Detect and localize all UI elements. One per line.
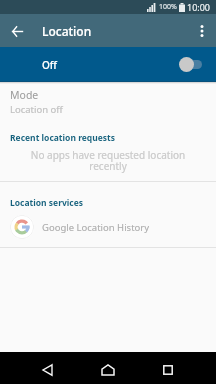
- staticText: Location services: [10, 197, 84, 209]
- button[interactable]: [6, 20, 28, 42]
- staticText: Recent location requests: [10, 132, 116, 144]
- staticText: 10:00: [187, 1, 211, 13]
- button[interactable]: Mode: [0, 88, 216, 116]
- button[interactable]: Off: [0, 47, 216, 82]
- button[interactable]: [193, 22, 211, 40]
- button[interactable]: [35, 358, 59, 382]
- staticText: Location: [42, 23, 92, 39]
- staticText: Google Location History: [42, 221, 150, 234]
- staticText: No apps have requested location recently: [0, 148, 216, 173]
- staticText: Location off: [10, 103, 63, 116]
- button[interactable]: Google Location History: [0, 215, 216, 239]
- button[interactable]: [95, 357, 121, 383]
- staticText: Mode: [10, 88, 39, 102]
- staticText: Off: [42, 58, 57, 72]
- staticText: 100%: [159, 2, 177, 12]
- button[interactable]: [156, 358, 180, 382]
